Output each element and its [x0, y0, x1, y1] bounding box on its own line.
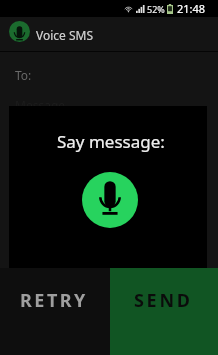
staticText: 52% — [147, 3, 165, 15]
staticText: Message — [15, 97, 66, 113]
button[interactable]: Voice SMS app icon — [9, 21, 30, 42]
staticText: 21:48 — [177, 1, 206, 16]
staticText: SEND — [134, 288, 193, 313]
button[interactable]: RETRY — [0, 268, 110, 355]
staticText: Say message: — [57, 130, 165, 153]
staticText: To: — [15, 67, 32, 83]
button[interactable]: SEND — [110, 268, 218, 355]
button[interactable]: Record voice message — [82, 172, 138, 228]
staticText: RETRY — [20, 288, 88, 313]
staticText: Voice SMS — [36, 27, 94, 43]
